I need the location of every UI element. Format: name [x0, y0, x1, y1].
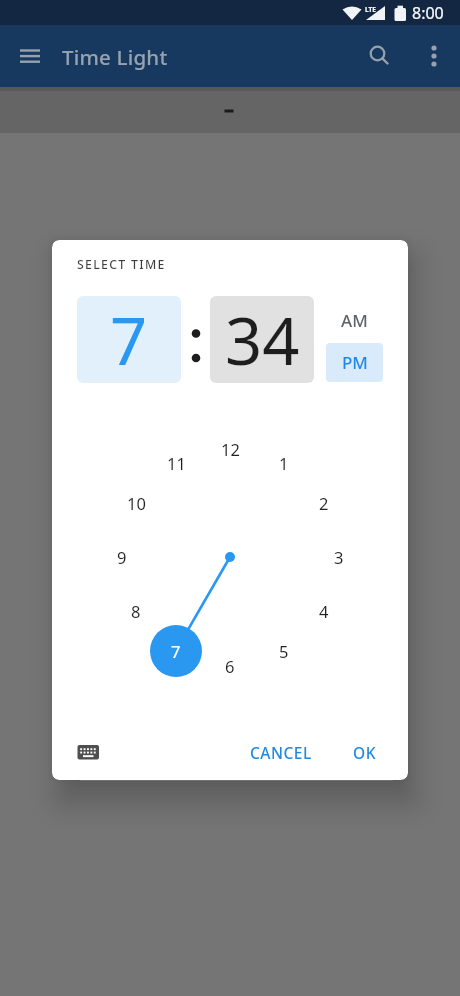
button[interactable]: 6: [215, 651, 245, 681]
staticText: AM: [341, 309, 368, 332]
staticText: 2: [319, 492, 329, 514]
staticText: 4: [319, 600, 329, 622]
button[interactable]: 11: [161, 448, 191, 478]
button[interactable]: 12: [215, 434, 245, 464]
staticText: 11: [167, 452, 186, 474]
staticText: 12: [221, 438, 240, 460]
button[interactable]: OK: [340, 734, 388, 770]
staticText: 8: [131, 600, 141, 622]
button[interactable]: PM: [326, 343, 383, 382]
button[interactable]: 1: [269, 448, 299, 478]
button[interactable]: 34: [210, 296, 314, 383]
button[interactable]: 7: [150, 625, 202, 677]
button[interactable]: 3: [324, 542, 354, 572]
button[interactable]: [12, 38, 48, 74]
staticText: 34: [225, 296, 300, 383]
staticText: 10: [127, 492, 146, 514]
staticText: 6: [225, 655, 235, 677]
staticText: 7: [110, 296, 148, 383]
staticText: 5: [279, 640, 289, 662]
staticText: OK: [353, 742, 376, 763]
button[interactable]: 5: [269, 636, 299, 666]
button[interactable]: CANCEL: [245, 734, 317, 770]
staticText: Time Light: [62, 43, 168, 71]
staticText: 7: [171, 640, 181, 662]
button[interactable]: [69, 734, 107, 770]
staticText: CANCEL: [250, 742, 312, 763]
button[interactable]: 10: [121, 488, 151, 518]
staticText: SELECT TIME: [77, 256, 166, 273]
staticText: 8:00: [412, 2, 444, 24]
button[interactable]: [361, 38, 397, 74]
staticText: 3: [334, 546, 344, 568]
staticText: 9: [117, 546, 127, 568]
button[interactable]: AM: [326, 301, 383, 340]
button[interactable]: 9: [107, 542, 137, 572]
button[interactable]: 4: [309, 596, 339, 626]
button[interactable]: 7: [77, 296, 181, 383]
button[interactable]: 8: [121, 596, 151, 626]
button[interactable]: 2: [309, 488, 339, 518]
button[interactable]: [416, 38, 452, 74]
staticText: LTE: [365, 5, 376, 14]
staticText: 1: [279, 452, 289, 474]
staticText: PM: [342, 351, 368, 374]
